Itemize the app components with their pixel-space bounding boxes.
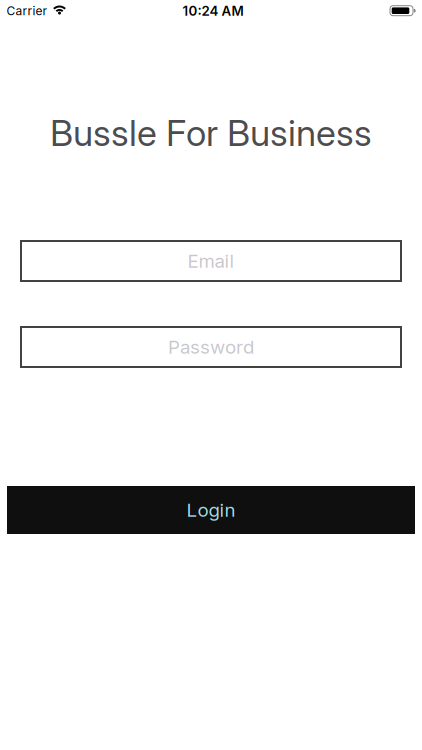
staticText: Email [187, 250, 234, 272]
button[interactable]: Login [7, 486, 415, 534]
staticText: Carrier [6, 4, 47, 18]
staticText: 10:24 AM [182, 3, 243, 19]
button[interactable]: Email [21, 241, 401, 281]
staticText: Bussle For Business [50, 112, 372, 154]
button[interactable]: Password [21, 327, 401, 367]
staticText: Login [186, 499, 235, 521]
staticText: Password [168, 336, 254, 358]
